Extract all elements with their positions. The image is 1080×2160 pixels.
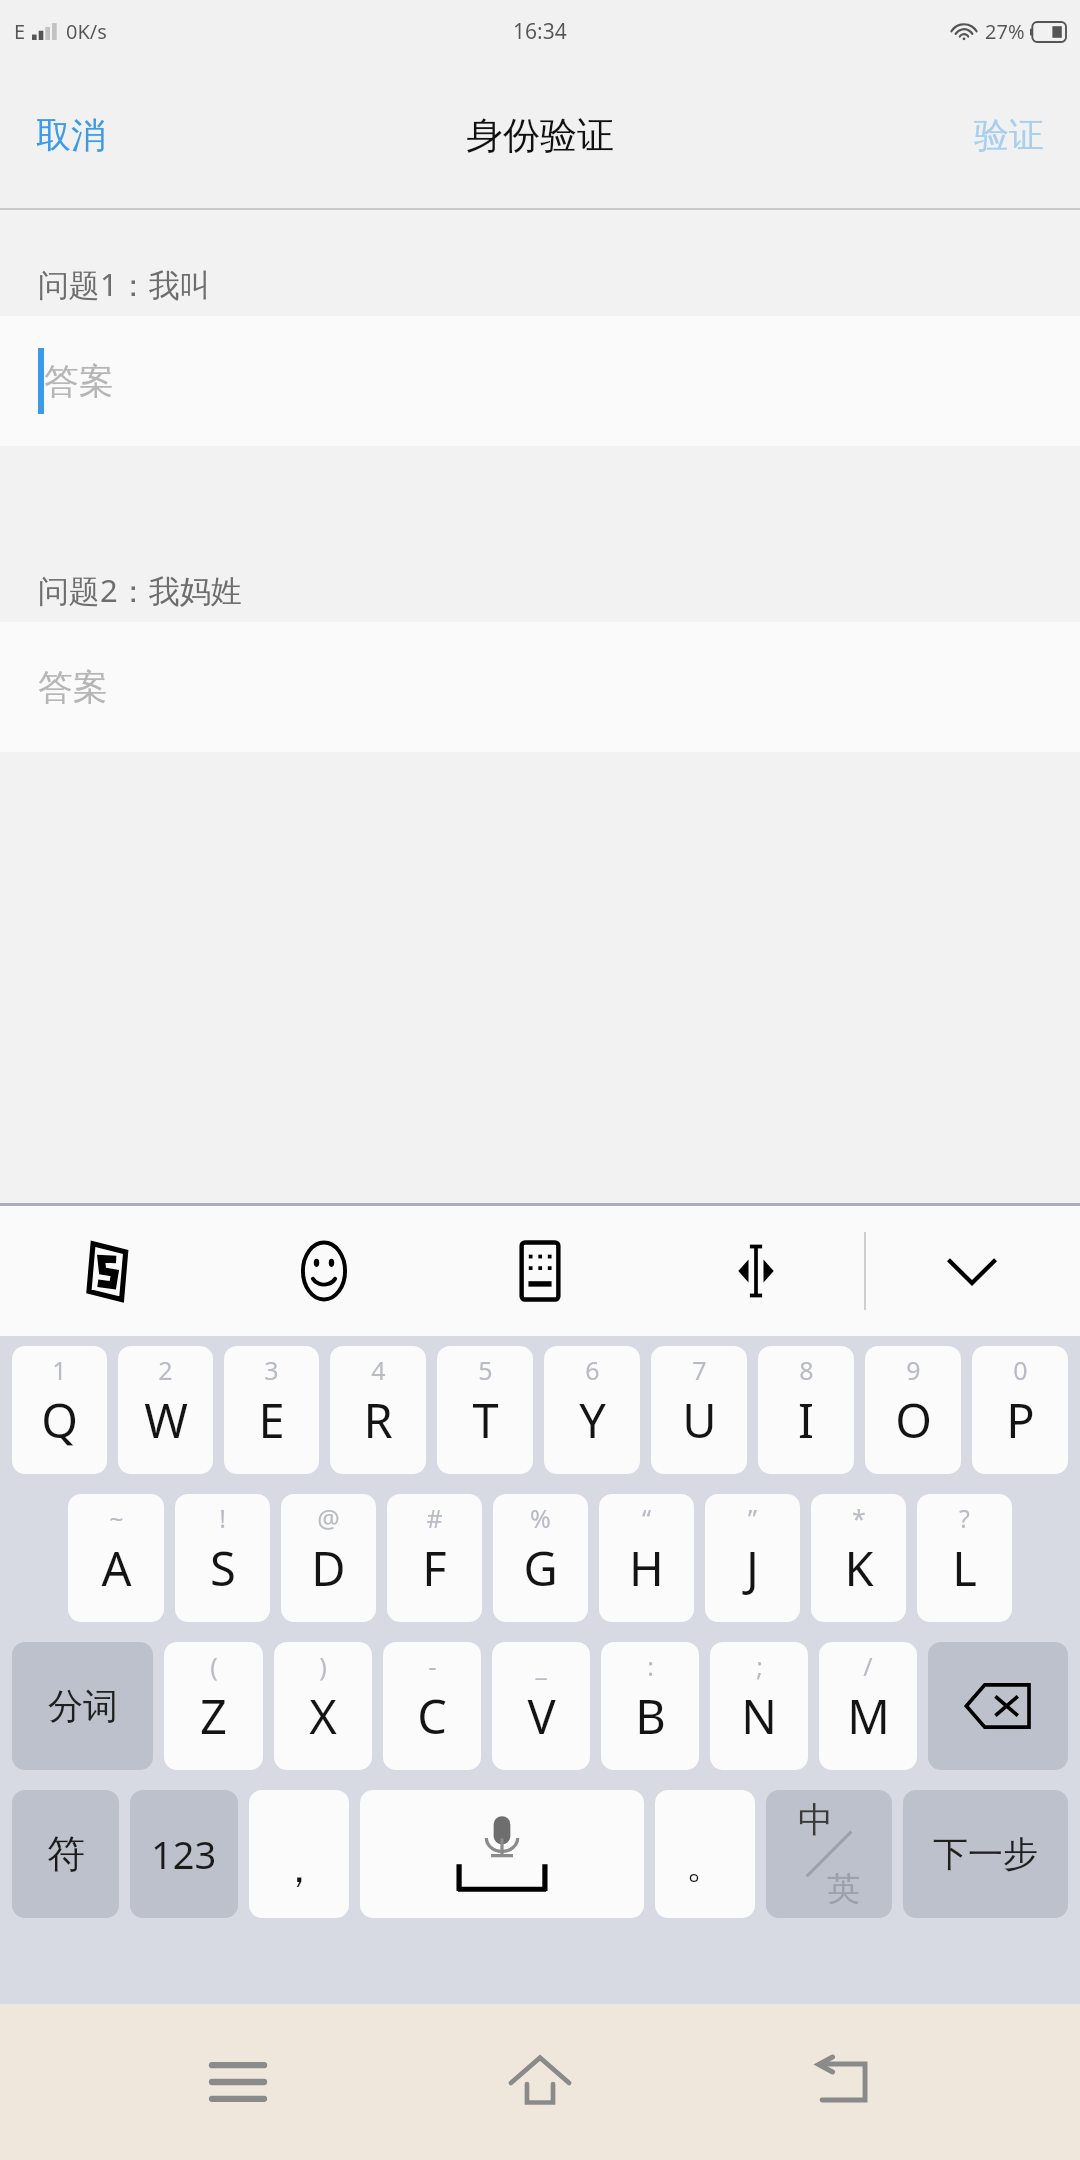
button[interactable]: Move cursor <box>648 1206 864 1336</box>
staticText: / <box>863 1649 873 1683</box>
button[interactable]: 1 <box>12 1346 107 1474</box>
staticText: 7 <box>692 1353 707 1387</box>
staticText: ， <box>279 1843 319 1893</box>
button[interactable]: “ <box>599 1494 694 1622</box>
button[interactable]: 123 <box>130 1790 238 1918</box>
staticText: S <box>210 1536 236 1600</box>
staticText: ( <box>210 1649 218 1683</box>
staticText: I <box>798 1388 814 1452</box>
staticText: 4 <box>371 1353 386 1387</box>
staticText: R <box>363 1388 393 1452</box>
button[interactable]: 4 <box>330 1346 426 1474</box>
button[interactable]: 取消 <box>16 101 126 169</box>
staticText: F <box>422 1536 447 1600</box>
button[interactable]: 6 <box>544 1346 640 1474</box>
button[interactable]: Chinese English toggle <box>766 1790 892 1918</box>
button[interactable]: 下一步 <box>903 1790 1068 1918</box>
staticText: 16:34 <box>513 17 567 46</box>
button[interactable]: 答案 <box>0 316 1080 446</box>
staticText: 9 <box>906 1353 921 1387</box>
button[interactable]: ~ <box>68 1494 164 1622</box>
staticText: _ <box>535 1649 547 1683</box>
staticText: 取消 <box>36 113 106 157</box>
staticText: 答案 <box>38 665 108 709</box>
staticText: 问题1：我叫 <box>38 263 211 305</box>
staticText: “ <box>642 1501 651 1535</box>
button[interactable]: 7 <box>651 1346 747 1474</box>
staticText: 下一步 <box>933 1832 1038 1876</box>
button[interactable]: ， <box>249 1790 349 1918</box>
button[interactable]: ) <box>274 1642 372 1770</box>
button[interactable]: Recents <box>173 2017 303 2147</box>
staticText: C <box>417 1684 447 1748</box>
button[interactable]: Hide keyboard <box>917 1216 1027 1326</box>
staticText: 0 <box>1013 1353 1028 1387</box>
button[interactable]: ( <box>164 1642 263 1770</box>
button[interactable]: % <box>493 1494 588 1622</box>
button[interactable]: @ <box>281 1494 376 1622</box>
staticText: Q <box>41 1388 78 1452</box>
button[interactable]: 8 <box>758 1346 854 1474</box>
staticText: - <box>428 1649 437 1683</box>
staticText: 3 <box>264 1353 279 1387</box>
staticText: 答案 <box>44 359 114 403</box>
staticText: 验证 <box>974 113 1044 157</box>
staticText: 0K/s <box>66 18 107 45</box>
staticText: 分词 <box>48 1684 118 1728</box>
staticText: W <box>144 1388 188 1452</box>
staticText: ? <box>959 1501 970 1535</box>
staticText: 英 <box>827 1868 860 1910</box>
staticText: 8 <box>799 1353 814 1387</box>
button[interactable]: 5 <box>437 1346 533 1474</box>
staticText: B <box>635 1684 666 1748</box>
button[interactable]: * <box>811 1494 906 1622</box>
button[interactable]: 。 <box>655 1790 755 1918</box>
button[interactable]: : <box>601 1642 699 1770</box>
button[interactable]: 3 <box>224 1346 319 1474</box>
staticText: * <box>852 1501 866 1535</box>
button[interactable]: 2 <box>118 1346 213 1474</box>
button[interactable]: Home <box>475 2017 605 2147</box>
staticText: A <box>101 1536 132 1600</box>
staticText: ” <box>748 1501 757 1535</box>
staticText: D <box>311 1536 346 1600</box>
button[interactable]: Backspace <box>928 1642 1068 1770</box>
button[interactable]: Sogou input <box>0 1206 216 1336</box>
button[interactable]: ! <box>175 1494 270 1622</box>
button[interactable]: Keyboard layout <box>432 1206 648 1336</box>
button[interactable]: ” <box>705 1494 800 1622</box>
staticText: 123 <box>151 1828 217 1880</box>
staticText: Y <box>579 1388 606 1452</box>
button[interactable]: Space <box>360 1790 644 1918</box>
staticText: : <box>647 1649 654 1683</box>
button[interactable]: _ <box>492 1642 590 1770</box>
button[interactable]: Emoji <box>216 1206 432 1336</box>
button[interactable]: / <box>819 1642 917 1770</box>
button[interactable]: 分词 <box>12 1642 153 1770</box>
staticText: @ <box>317 1501 340 1535</box>
staticText: ) <box>319 1649 327 1683</box>
staticText: H <box>629 1536 664 1600</box>
button[interactable]: - <box>383 1642 481 1770</box>
button[interactable]: ; <box>710 1642 808 1770</box>
staticText: V <box>527 1684 556 1748</box>
button[interactable]: ? <box>917 1494 1012 1622</box>
staticText: O <box>895 1388 932 1452</box>
staticText: 。 <box>686 1841 724 1889</box>
staticText: ~ <box>109 1501 124 1535</box>
button[interactable]: 验证 <box>954 101 1064 169</box>
staticText: 中 <box>798 1798 833 1842</box>
button[interactable]: 0 <box>972 1346 1068 1474</box>
button[interactable]: 9 <box>865 1346 961 1474</box>
button[interactable]: 符 <box>12 1790 119 1918</box>
button[interactable]: # <box>387 1494 482 1622</box>
button[interactable]: Back <box>778 2017 908 2147</box>
staticText: E <box>258 1388 285 1452</box>
staticText: G <box>523 1536 558 1600</box>
staticText: Z <box>200 1684 227 1748</box>
staticText: L <box>952 1536 977 1600</box>
staticText: 符 <box>47 1830 85 1878</box>
staticText: 问题2：我妈姓 <box>38 569 242 611</box>
staticText: ; <box>756 1649 763 1683</box>
button[interactable]: 答案 <box>0 622 1080 752</box>
